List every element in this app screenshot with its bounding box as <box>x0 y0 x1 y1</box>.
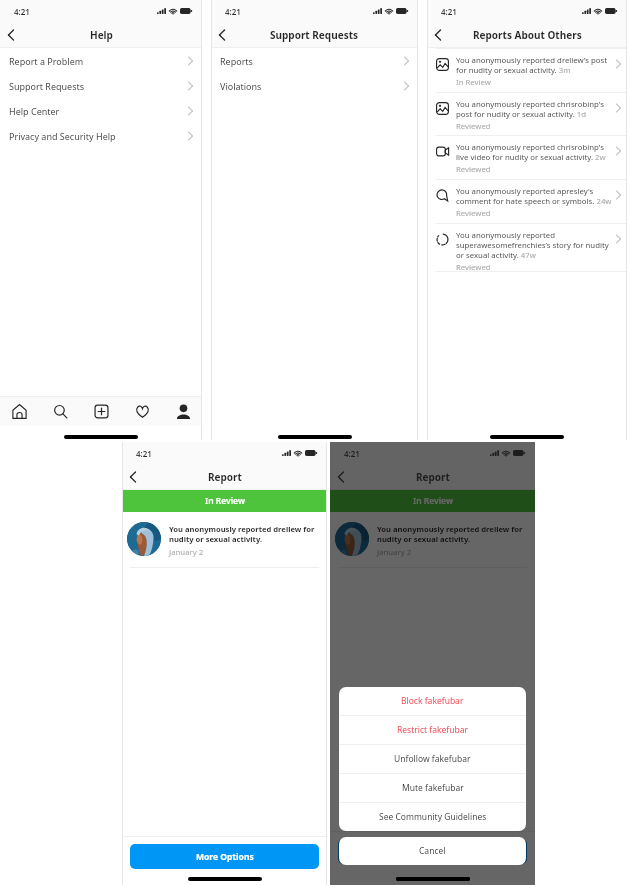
staticText: Report a Problem <box>9 55 84 67</box>
button[interactable]: Profile <box>169 397 197 425</box>
button[interactable]: Reports <box>211 48 418 73</box>
staticText: Reviewed <box>456 164 491 175</box>
button[interactable]: Back <box>0 22 22 48</box>
staticText: Reviewed <box>456 208 491 219</box>
button[interactable]: Help Center <box>0 98 202 123</box>
button[interactable]: Search <box>46 397 74 425</box>
button[interactable]: Violations <box>211 73 418 98</box>
staticText: Violations <box>220 80 262 92</box>
staticText: Mute fakefubar <box>402 782 464 794</box>
staticText: 4:21 <box>441 6 457 17</box>
button[interactable]: More Options <box>130 844 319 869</box>
staticText: January 2 <box>169 547 204 558</box>
staticText: You anonymously reported drellew’s post … <box>456 55 612 75</box>
button[interactable]: Unfollow fakefubar <box>339 745 526 773</box>
staticText: 4:21 <box>344 448 360 459</box>
button[interactable]: Back <box>122 464 144 490</box>
staticText: See Community Guidelines <box>379 811 487 823</box>
staticText: Reviewed <box>456 262 491 271</box>
button[interactable]: You anonymously reported apresley's comm… <box>427 179 627 223</box>
button[interactable]: Back <box>211 22 233 48</box>
button[interactable]: Back <box>427 22 449 48</box>
staticText: Help Center <box>9 105 60 117</box>
staticText: January 2 <box>377 547 412 558</box>
button[interactable]: You anonymously reported superawesomefre… <box>427 223 627 271</box>
staticText: Reports <box>220 55 253 67</box>
button[interactable]: Cancel <box>339 837 526 865</box>
button[interactable]: Restrict fakefubar <box>339 716 526 744</box>
button[interactable]: Create <box>87 397 115 425</box>
staticText: Block fakefubar <box>401 695 464 707</box>
staticText: Support Requests <box>9 80 85 92</box>
button[interactable]: You anonymously reported chrisrobinp's l… <box>427 135 627 179</box>
button[interactable]: Report a Problem <box>0 48 202 73</box>
staticText: Reports About Others <box>473 28 582 42</box>
button[interactable]: Mute fakefubar <box>339 774 526 802</box>
staticText: You anonymously reported superawesomefre… <box>456 230 612 260</box>
staticText: Privacy and Security Help <box>9 130 116 142</box>
button[interactable]: Support Requests <box>0 73 202 98</box>
staticText: You anonymously reported apresley's comm… <box>456 186 612 206</box>
staticText: Report <box>416 470 450 484</box>
button[interactable]: You anonymously reported drellew’s post … <box>427 48 627 92</box>
button[interactable]: Home <box>5 397 33 425</box>
staticText: 4:21 <box>225 6 241 17</box>
staticText: More Options <box>196 851 254 863</box>
staticText: More Options <box>404 846 462 858</box>
button[interactable]: You anonymously reported chrisrobinp's p… <box>427 92 627 135</box>
button[interactable]: Block fakefubar <box>339 687 526 715</box>
staticText: You anonymously reported drellew for nud… <box>377 524 532 544</box>
staticText: Report <box>208 470 242 484</box>
staticText: In Review <box>456 77 491 88</box>
staticText: Support Requests <box>270 28 359 42</box>
staticText: In Review <box>205 495 245 507</box>
staticText: You anonymously reported chrisrobinp's p… <box>456 99 612 119</box>
button[interactable]: Privacy and Security Help <box>0 123 202 148</box>
staticText: Unfollow fakefubar <box>394 753 471 765</box>
button[interactable]: See Community Guidelines <box>339 803 526 831</box>
staticText: 4:21 <box>136 448 152 459</box>
staticText: Cancel <box>419 845 446 857</box>
staticText: In Review <box>413 495 453 507</box>
button[interactable]: Activity <box>128 397 156 425</box>
staticText: 4:21 <box>14 6 30 17</box>
staticText: You anonymously reported drellew for nud… <box>169 524 324 544</box>
staticText: Reviewed <box>456 121 491 132</box>
button[interactable]: More Options <box>338 839 527 864</box>
staticText: You anonymously reported chrisrobinp's l… <box>456 142 612 162</box>
button[interactable]: Back <box>330 464 352 490</box>
staticText: Help <box>90 28 113 42</box>
staticText: Restrict fakefubar <box>397 724 468 736</box>
